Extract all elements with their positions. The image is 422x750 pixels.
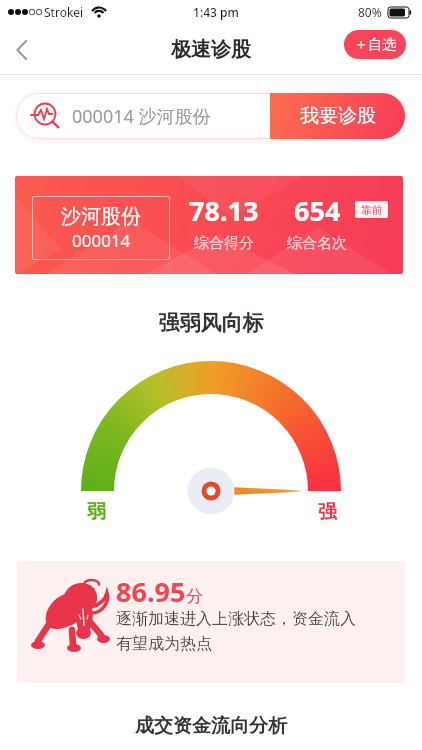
staticText: 成交资金流向分析 — [0, 714, 422, 738]
button[interactable] — [16, 93, 405, 139]
button[interactable]: 86.95 — [17, 561, 405, 683]
staticText: 靠前 — [361, 203, 383, 217]
staticText: 弱 — [87, 500, 106, 524]
staticText: 1:43 pm — [5, 4, 422, 20]
staticText: ＋自选 — [354, 36, 396, 54]
staticText: 综合得分 — [194, 234, 254, 253]
staticText: 沙河股份 — [61, 204, 141, 229]
staticText: 我要诊股 — [300, 104, 376, 128]
button[interactable]: 我要诊股 — [270, 93, 405, 139]
button[interactable] — [3, 31, 41, 69]
staticText: 80% — [358, 4, 382, 20]
staticText: 654 — [294, 192, 341, 229]
staticText: 逐渐加速进入上涨状态，资金流入 — [116, 609, 356, 629]
staticText: 000014 沙河股份 — [72, 104, 211, 129]
staticText: 分 — [186, 586, 203, 607]
staticText: Strokei — [44, 4, 84, 20]
staticText: 综合名次 — [287, 234, 347, 253]
staticText: 78.13 — [189, 192, 259, 229]
staticText: 000014 — [72, 229, 131, 252]
staticText: 86.95 — [116, 573, 186, 610]
staticText: 强 — [318, 500, 337, 524]
staticText: 有望成为热点 — [116, 634, 212, 654]
staticText: 极速诊股 — [0, 37, 422, 62]
staticText: 强弱风向标 — [0, 310, 422, 336]
button[interactable]: ＋自选 — [344, 30, 406, 59]
button[interactable]: 沙河股份 — [15, 176, 403, 274]
